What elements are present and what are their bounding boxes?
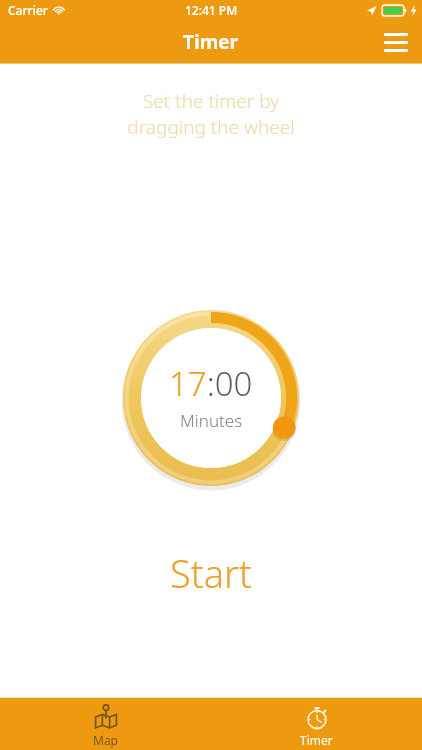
staticText: Map [93,732,118,748]
staticText: Set the timer by dragging the wheel [0,88,422,139]
staticText: Timer [300,732,333,748]
staticText: 17:00 [169,361,253,406]
staticText: Timer [183,29,239,55]
staticText: Carrier [8,2,48,18]
button[interactable]: 17:00 [123,310,299,486]
button[interactable]: Start [130,541,292,605]
staticText: Minutes [180,409,243,432]
staticText: Start [170,547,252,599]
button[interactable]: Menu [370,23,422,62]
button[interactable]: Map [0,698,211,750]
button[interactable]: Timer [211,698,422,750]
staticText: 12:41 PM [185,2,238,18]
